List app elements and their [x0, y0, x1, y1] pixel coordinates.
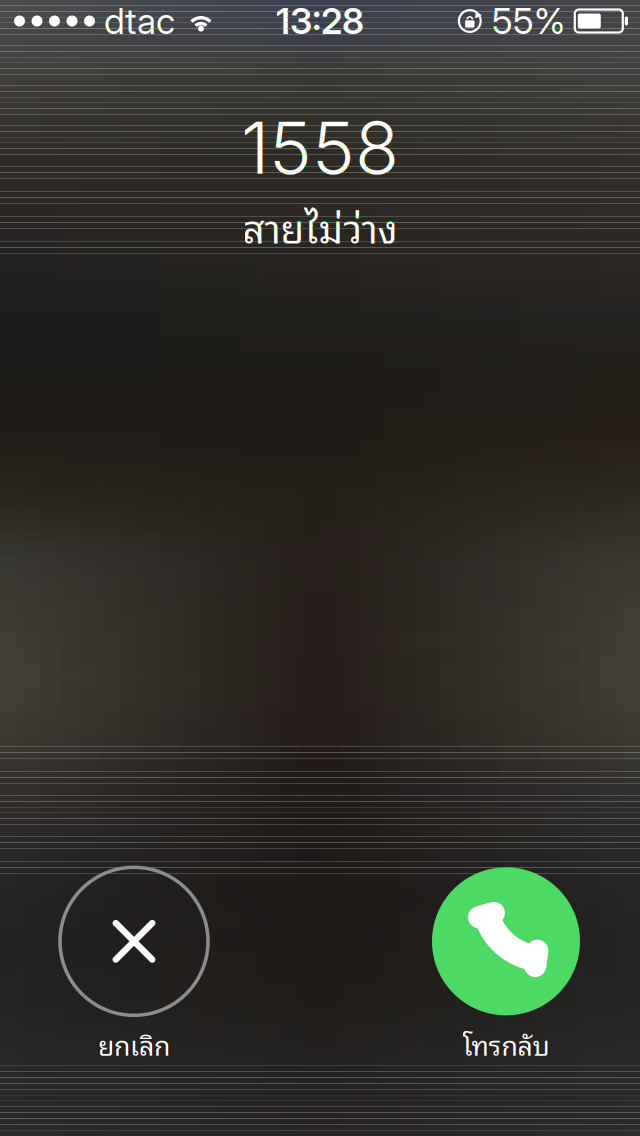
staticText: สายไม่ว่าง: [242, 195, 397, 257]
staticText: ยกเลิก: [98, 1022, 170, 1065]
button[interactable]: โทรกลับ: [413, 867, 599, 1065]
staticText: โทรกลับ: [462, 1022, 549, 1065]
staticText: 55%: [492, 0, 566, 43]
button[interactable]: ยกเลิก: [41, 867, 227, 1065]
staticText: 1558: [241, 104, 399, 191]
staticText: 13:28: [276, 0, 364, 43]
staticText: dtac: [104, 0, 175, 43]
